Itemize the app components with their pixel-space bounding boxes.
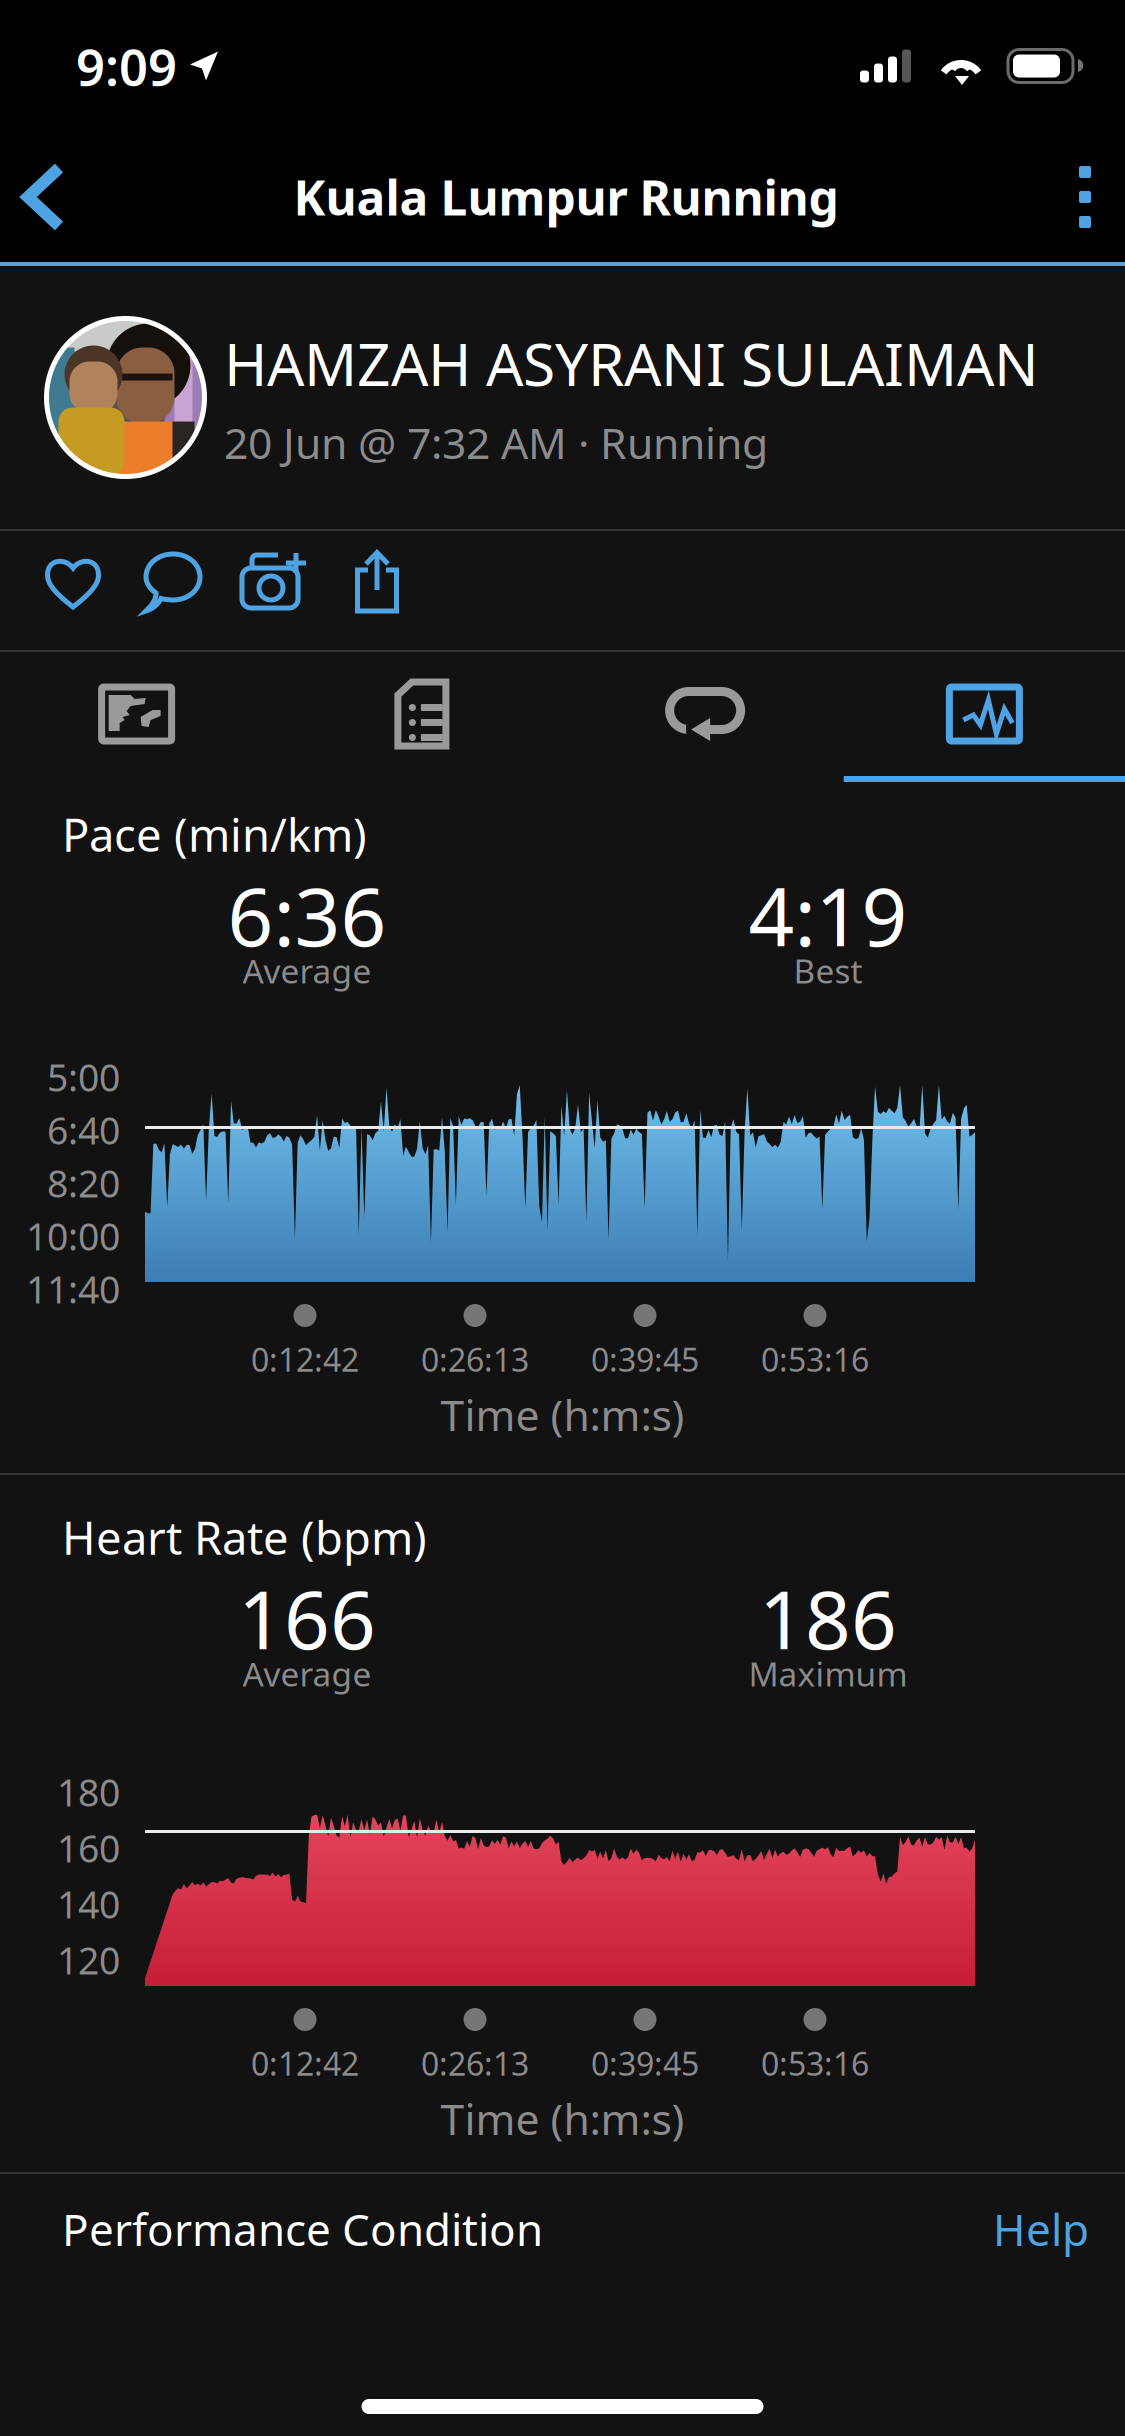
staticText: 0:39:45	[591, 2042, 699, 2084]
staticText: Heart Rate (bpm)	[62, 1507, 427, 1567]
staticText: Performance Condition	[62, 2200, 543, 2258]
button[interactable]: Map	[0, 652, 281, 776]
staticText: 9:09	[76, 32, 177, 100]
staticText: Maximum	[748, 1651, 907, 1696]
staticText: 180	[57, 1767, 120, 1817]
button[interactable]: Share	[337, 532, 417, 632]
button[interactable]: Details	[281, 652, 562, 776]
staticText: 0:12:42	[251, 2042, 359, 2084]
button[interactable]: Back	[0, 133, 93, 261]
button[interactable]: Charts	[844, 652, 1125, 776]
button[interactable]: More options	[1039, 132, 1125, 262]
staticText: 6:40	[47, 1105, 120, 1155]
staticText: Time (h:m:s)	[440, 1386, 684, 1443]
staticText: 0:39:45	[591, 1338, 699, 1380]
staticText: Pace (min/km)	[62, 804, 367, 864]
staticText: 166	[238, 1565, 376, 1671]
staticText: Kuala Lumpur Running	[293, 165, 838, 229]
staticText: 120	[57, 1935, 120, 1985]
staticText: 140	[57, 1879, 120, 1929]
staticText: 6:36	[227, 862, 386, 968]
staticText: 5:00	[47, 1052, 120, 1102]
staticText: 4:19	[748, 862, 907, 968]
staticText: 0:53:16	[761, 1338, 869, 1380]
staticText: Best	[793, 948, 862, 993]
staticText: 11:40	[26, 1264, 120, 1314]
staticText: Help	[993, 2200, 1089, 2258]
button[interactable]: Laps	[562, 652, 844, 776]
button[interactable]: Comment	[125, 533, 221, 631]
staticText: 0:26:13	[421, 2042, 529, 2084]
staticText: HAMZAH ASYRANI SULAIMAN	[224, 324, 1039, 402]
button[interactable]: Add photo	[224, 535, 324, 629]
staticText: 160	[57, 1823, 120, 1873]
staticText: 0:26:13	[421, 1338, 529, 1380]
button[interactable]: Help	[993, 2200, 1089, 2258]
staticText: Average	[242, 948, 371, 993]
button[interactable]: Like	[27, 537, 119, 627]
staticText: Time (h:m:s)	[440, 2090, 684, 2147]
staticText: 10:00	[26, 1211, 120, 1261]
staticText: 20 Jun @ 7:32 AM · Running	[224, 414, 768, 471]
staticText: Average	[242, 1651, 371, 1696]
staticText: 8:20	[47, 1158, 120, 1208]
staticText: 186	[759, 1565, 897, 1671]
staticText: 0:53:16	[761, 2042, 869, 2084]
staticText: 0:12:42	[251, 1338, 359, 1380]
